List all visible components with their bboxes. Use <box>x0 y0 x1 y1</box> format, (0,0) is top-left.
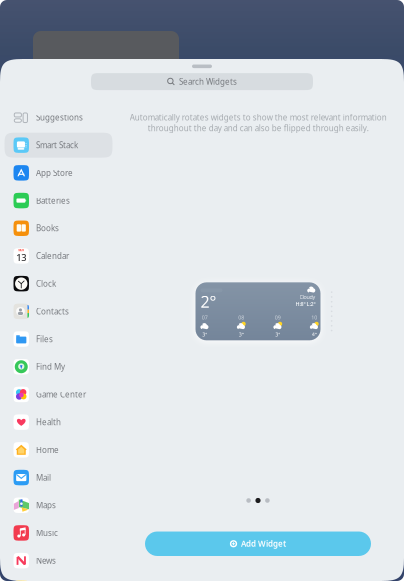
button[interactable]: Music <box>0 519 112 547</box>
staticText: Batteries <box>36 195 70 206</box>
staticText: Books <box>36 223 59 233</box>
button[interactable]: Add Widget <box>145 531 371 556</box>
staticText: 4° <box>312 331 317 338</box>
staticText: Files <box>36 334 53 344</box>
staticText: Mail <box>36 472 51 483</box>
button[interactable]: Home <box>0 436 112 464</box>
staticText: 13 <box>16 251 26 264</box>
button[interactable]: Suggestions <box>0 104 112 131</box>
staticText: Smart Stack <box>36 140 78 150</box>
staticText: Home <box>36 444 59 455</box>
staticText: Health <box>36 417 61 427</box>
button[interactable]: Notes <box>0 574 112 581</box>
button[interactable]: Game Center <box>0 381 112 408</box>
staticText: 3° <box>239 331 244 338</box>
button[interactable]: Smart Stack <box>0 131 112 159</box>
staticText: Maps <box>36 500 56 510</box>
button[interactable]: Mail <box>0 464 112 491</box>
staticText: Music <box>36 528 58 538</box>
button[interactable]: Clock <box>0 270 112 297</box>
staticText: 08 <box>238 314 244 321</box>
staticText: 10 <box>311 314 317 321</box>
staticText: Search Widgets <box>179 76 237 87</box>
button[interactable]: Batteries <box>0 187 112 214</box>
staticText: Automatically rotates widgets to show th… <box>129 112 386 133</box>
button[interactable]: Maps <box>0 491 112 519</box>
button[interactable]: App Store <box>0 159 112 187</box>
staticText: 09 <box>275 314 281 321</box>
button[interactable]: Contacts <box>0 297 112 325</box>
staticText: Suggestions <box>36 112 83 123</box>
staticText: 2° <box>200 291 216 312</box>
button[interactable]: Health <box>0 408 112 436</box>
staticText: 3° <box>275 331 280 338</box>
staticText: Clock <box>36 278 56 289</box>
staticText: Game Center <box>36 389 86 400</box>
button[interactable]: Find My <box>0 353 112 381</box>
button[interactable]: Search Widgets <box>91 73 313 90</box>
button[interactable]: MON <box>0 242 112 270</box>
button[interactable]: Books <box>0 214 112 242</box>
button[interactable]: Files <box>0 325 112 353</box>
staticText: Contacts <box>36 306 69 317</box>
staticText: MON <box>18 248 24 252</box>
staticText: App Store <box>36 167 73 178</box>
staticText: Find My <box>36 361 65 372</box>
staticText: Calendar <box>36 251 69 261</box>
staticText: 3° <box>202 331 207 338</box>
staticText: Cloudy <box>299 293 315 300</box>
button[interactable]: News <box>0 547 112 574</box>
staticText: Add Widget <box>241 538 286 549</box>
staticText: H:8° L:2° <box>295 300 315 307</box>
staticText: News <box>36 555 56 566</box>
staticText: 07 <box>202 314 208 321</box>
